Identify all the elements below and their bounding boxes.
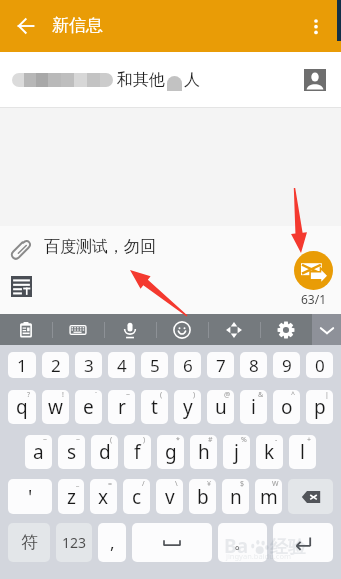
button[interactable]: l	[289, 435, 316, 469]
staticText: u	[215, 394, 227, 420]
button[interactable]: Back	[0, 0, 52, 52]
button[interactable]: q	[8, 390, 36, 424]
button[interactable]: e	[75, 390, 102, 424]
button[interactable]: v	[156, 479, 183, 514]
button[interactable]: 5	[141, 352, 168, 378]
button[interactable]: n	[222, 479, 249, 514]
button[interactable]: 0	[306, 352, 333, 378]
button[interactable]: 9	[273, 352, 300, 378]
staticText: x	[98, 484, 109, 510]
button[interactable]: z	[58, 479, 84, 514]
button[interactable]: Attach	[0, 226, 44, 270]
button[interactable]: 1	[8, 352, 36, 378]
staticText: ?	[27, 390, 31, 400]
button[interactable]: 6	[174, 352, 201, 378]
staticText: s	[67, 439, 77, 465]
staticText: r	[118, 394, 126, 420]
button[interactable]: u	[207, 390, 234, 424]
staticText: )	[193, 390, 196, 400]
button[interactable]: Space	[132, 523, 212, 562]
staticText: l	[300, 439, 305, 465]
button[interactable]: x	[90, 479, 117, 514]
button[interactable]: 123	[56, 523, 92, 562]
staticText: /	[142, 479, 145, 489]
staticText: (	[110, 435, 113, 445]
button[interactable]: 符	[8, 523, 50, 562]
staticText: @	[224, 390, 231, 400]
button[interactable]: g	[157, 435, 184, 469]
button[interactable]: r	[108, 390, 135, 424]
staticText: 和其他	[117, 70, 165, 90]
button[interactable]: 7	[207, 352, 234, 378]
staticText: %	[241, 435, 247, 445]
button[interactable]: 3	[75, 352, 102, 378]
button[interactable]: Subject	[0, 270, 44, 306]
staticText: a	[33, 439, 44, 465]
staticText: e	[83, 394, 94, 420]
staticText: (	[160, 390, 163, 400]
staticText: ,	[110, 531, 115, 554]
staticText: o	[281, 394, 293, 420]
button[interactable]: w	[42, 390, 69, 424]
button[interactable]: a	[25, 435, 52, 469]
staticText: 8	[249, 354, 259, 377]
button[interactable]: k	[256, 435, 283, 469]
button[interactable]: i	[240, 390, 267, 424]
staticText: c	[132, 484, 142, 510]
button[interactable]: '	[8, 479, 52, 514]
button[interactable]: m	[255, 479, 282, 514]
staticText: ^	[291, 390, 296, 400]
staticText: =	[108, 479, 113, 489]
staticText: n	[230, 484, 242, 510]
button[interactable]: Hide keyboard	[312, 314, 341, 345]
button[interactable]: Settings	[260, 314, 312, 345]
button[interactable]: o	[273, 390, 300, 424]
staticText: 新信息	[52, 15, 103, 36]
staticText: -	[275, 435, 278, 445]
button[interactable]: Clipboard	[0, 314, 52, 345]
button[interactable]: y	[174, 390, 201, 424]
staticText: *	[176, 435, 180, 445]
button[interactable]: s	[58, 435, 85, 469]
staticText: +	[307, 435, 312, 445]
button[interactable]: Keyboard layout	[52, 314, 104, 345]
button[interactable]: j	[223, 435, 250, 469]
button[interactable]: t	[141, 390, 168, 424]
button[interactable]: Backspace	[288, 479, 333, 514]
button[interactable]: Send	[294, 251, 333, 290]
button[interactable]: f	[124, 435, 151, 469]
button[interactable]: More options	[292, 0, 340, 52]
staticText: ~	[43, 435, 48, 445]
staticText: j	[234, 439, 239, 465]
staticText: 123	[62, 533, 87, 552]
button[interactable]: p	[306, 390, 333, 424]
staticText: 经验	[270, 536, 306, 559]
staticText: t	[151, 394, 158, 420]
staticText: h	[198, 439, 210, 465]
staticText: ~	[76, 435, 81, 445]
staticText: i	[251, 394, 256, 420]
staticText: ~	[126, 390, 131, 400]
button[interactable]: b	[189, 479, 216, 514]
button[interactable]: h	[190, 435, 217, 469]
button[interactable]: d	[91, 435, 118, 469]
button[interactable]: Voice input	[104, 314, 156, 345]
button[interactable]: ,	[98, 523, 126, 562]
staticText: p	[314, 394, 326, 420]
staticText: 人	[184, 70, 200, 90]
button[interactable]: 4	[108, 352, 135, 378]
staticText: &	[258, 390, 264, 400]
staticText: ¥	[207, 479, 212, 489]
staticText: `	[95, 390, 97, 400]
button[interactable]: Enter	[273, 523, 333, 562]
staticText: z	[67, 484, 76, 510]
button[interactable]: 2	[42, 352, 69, 378]
button[interactable]: Add recipient	[304, 69, 326, 91]
button[interactable]: 。	[218, 523, 267, 562]
button[interactable]: 8	[240, 352, 267, 378]
button[interactable]: Emoji	[156, 314, 208, 345]
staticText: !	[62, 390, 64, 400]
button[interactable]: Move cursor	[208, 314, 260, 345]
staticText: q	[16, 394, 28, 420]
button[interactable]: c	[123, 479, 150, 514]
